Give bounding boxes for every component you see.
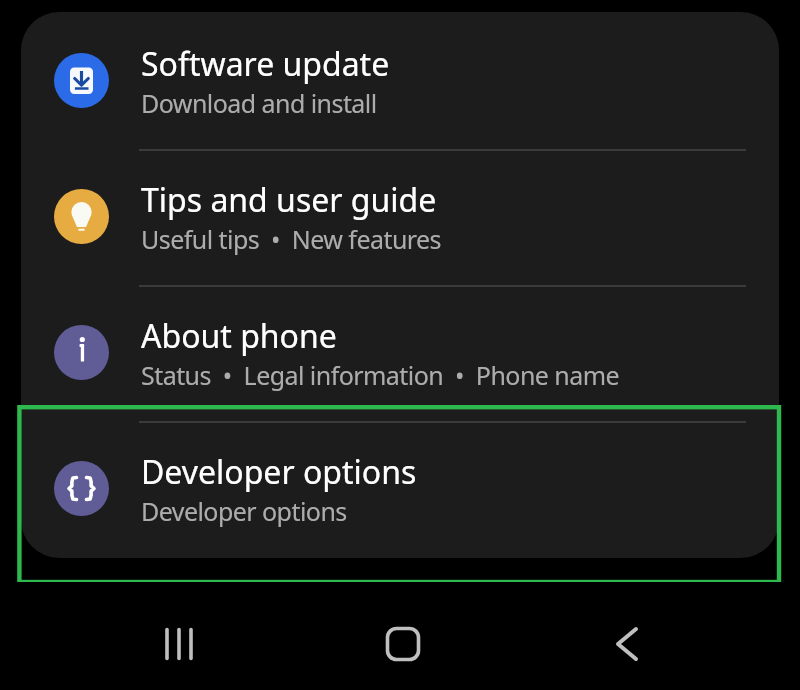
staticText: Developer options [141, 494, 347, 528]
staticText: Software update [141, 42, 390, 86]
staticText: About phone [141, 314, 337, 358]
staticText: Developer options [141, 450, 417, 494]
staticText: Status • Legal information • Phone name [141, 358, 620, 392]
staticText: Download and install [141, 86, 377, 120]
staticText: Tips and user guide [141, 178, 437, 222]
button[interactable]: Tips and user guide [21, 148, 779, 284]
button[interactable]: About phone [21, 284, 779, 420]
button[interactable]: Home [375, 607, 431, 681]
button[interactable]: Software update [21, 12, 779, 148]
button[interactable]: Back [599, 607, 655, 681]
button[interactable]: Developer options [21, 420, 779, 556]
staticText: Useful tips • New features [141, 222, 442, 256]
button[interactable]: Recent apps [151, 607, 207, 681]
